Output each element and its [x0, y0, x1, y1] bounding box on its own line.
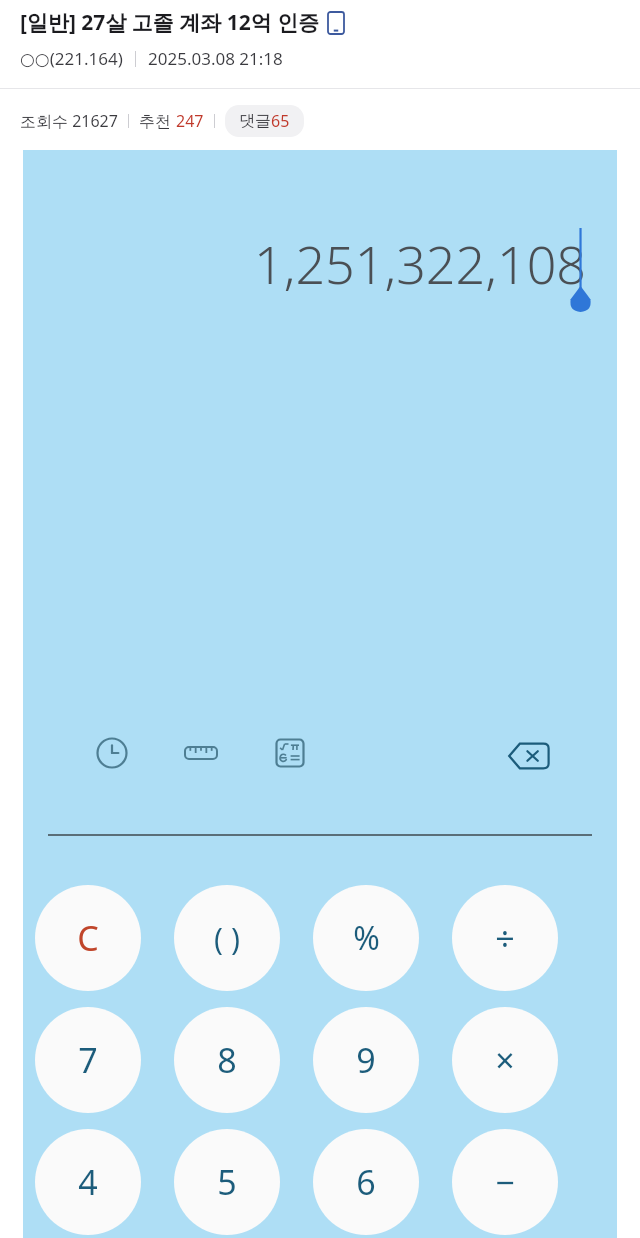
- staticText: 8: [217, 1037, 237, 1083]
- staticText: ×: [495, 1037, 515, 1083]
- button[interactable]: ×: [452, 1007, 558, 1113]
- button[interactable]: −: [452, 1129, 558, 1235]
- button[interactable]: Backspace: [503, 730, 555, 782]
- button[interactable]: 9: [313, 1007, 419, 1113]
- staticText: 4: [78, 1159, 98, 1205]
- staticText: 5: [217, 1159, 237, 1205]
- button[interactable]: 7: [35, 1007, 141, 1113]
- staticText: ÷: [495, 915, 515, 961]
- button[interactable]: [일반] 27살 고졸 계좌 12억 인증: [20, 8, 624, 37]
- staticText: C: [77, 915, 99, 961]
- staticText: 7: [78, 1037, 98, 1083]
- staticText: ○○(221.164): [20, 47, 123, 70]
- button[interactable]: Scientific functions: [267, 730, 313, 776]
- button[interactable]: 댓글: [225, 105, 304, 137]
- staticText: −: [495, 1159, 515, 1205]
- button[interactable]: History: [89, 730, 135, 776]
- staticText: 1,251,322,108: [254, 228, 587, 299]
- button[interactable]: ÷: [452, 885, 558, 991]
- button[interactable]: 4: [35, 1129, 141, 1235]
- staticText: 6: [356, 1159, 376, 1205]
- button[interactable]: 5: [174, 1129, 280, 1235]
- button[interactable]: %: [313, 885, 419, 991]
- staticText: ( ): [214, 918, 240, 959]
- staticText: 247: [176, 110, 204, 132]
- button[interactable]: 6: [313, 1129, 419, 1235]
- staticText: 65: [271, 110, 290, 132]
- staticText: [일반] 27살 고졸 계좌 12억 인증: [20, 8, 320, 37]
- button[interactable]: Unit converter: [178, 730, 224, 776]
- button[interactable]: 8: [174, 1007, 280, 1113]
- staticText: 9: [356, 1037, 376, 1083]
- staticText: 댓글: [239, 111, 271, 131]
- staticText: 2025.03.08 21:18: [148, 47, 283, 70]
- button[interactable]: ( ): [174, 885, 280, 991]
- staticText: 추천: [139, 110, 176, 132]
- staticText: 조회수 21627: [20, 110, 118, 132]
- staticText: %: [353, 916, 380, 960]
- button[interactable]: C: [35, 885, 141, 991]
